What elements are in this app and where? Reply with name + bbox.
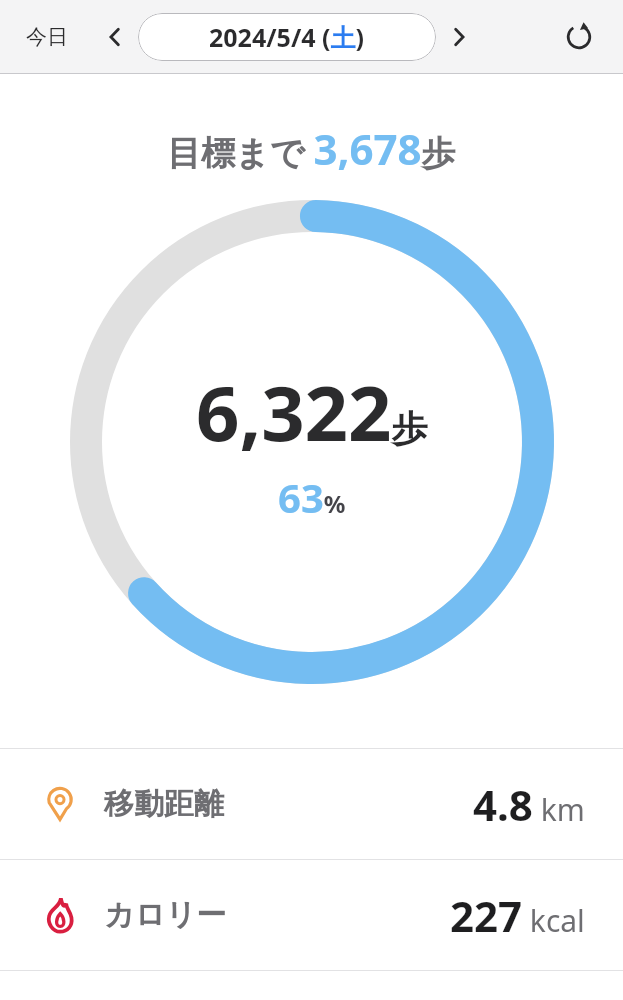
staticText: カロリー [104,896,227,934]
button[interactable]: 2024/5/4 (土) [138,13,436,61]
button[interactable]: カロリー [0,860,623,970]
staticText: 6,322歩 [196,360,428,464]
staticText: 今日 [26,24,68,50]
staticText: 4.8 km [473,776,585,833]
staticText: 目標まで 3,678歩 [167,120,456,177]
staticText: 63% [278,470,346,524]
staticText: 移動距離 [104,785,224,823]
staticText: 2024/5/4 (土) [209,20,365,54]
button[interactable]: 次の日 [438,16,480,58]
button[interactable]: 前の日 [94,16,136,58]
staticText: 227 kcal [450,887,585,944]
button[interactable]: 今日 [18,18,76,56]
button[interactable]: 移動距離 [0,749,623,859]
button[interactable]: 更新 [553,11,605,63]
